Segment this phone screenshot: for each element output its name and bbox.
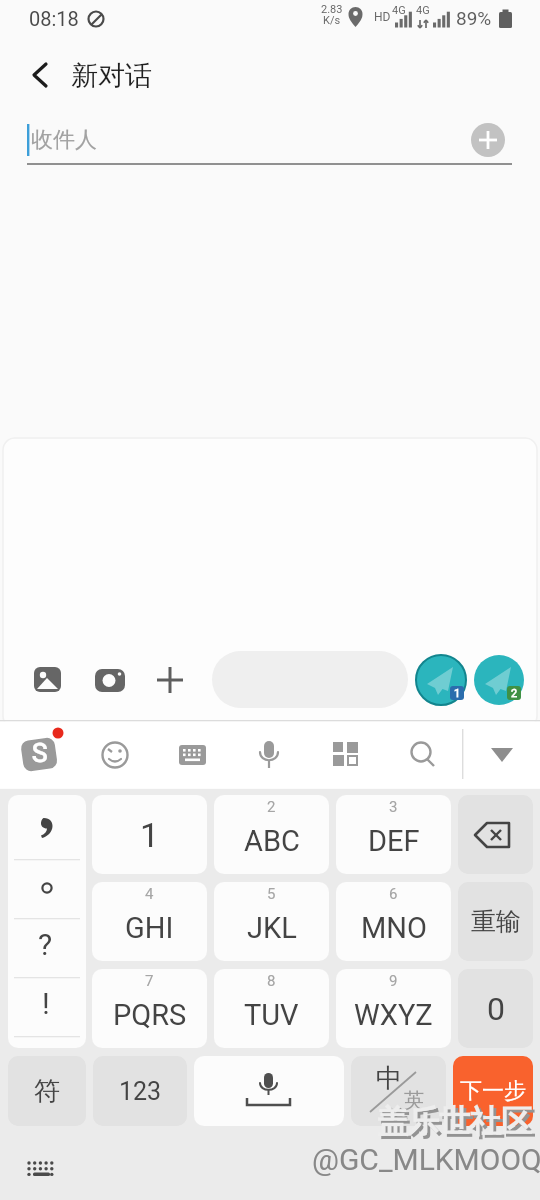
staticText: PQRS [113, 998, 187, 1032]
staticText: 4 [145, 885, 154, 903]
staticText: ABC [244, 824, 300, 858]
button[interactable] [458, 795, 533, 874]
staticText: 2.83 [321, 3, 343, 16]
staticText: 1 [454, 687, 461, 700]
staticText: ? [38, 927, 53, 962]
staticText: @GC_MLKMOOQ [312, 1142, 540, 1177]
button[interactable]: 6 [336, 882, 451, 961]
staticText: 08:18 [29, 7, 79, 30]
button[interactable]: 3 [336, 795, 451, 874]
staticText: 英 [404, 1088, 424, 1113]
button[interactable] [351, 1056, 446, 1126]
button[interactable]: 4 [92, 882, 207, 961]
button[interactable]: 2 [214, 795, 329, 874]
staticText: 6 [389, 885, 398, 903]
staticText: 新对话 [71, 59, 152, 93]
staticText: 盖乐世社区 [377, 1102, 532, 1141]
staticText: 4G [392, 4, 406, 17]
button[interactable]: 重输 [458, 882, 533, 961]
staticText: 符 [34, 1075, 60, 1108]
staticText: 下一步 [460, 1077, 526, 1105]
button[interactable]: 9 [336, 969, 451, 1048]
button[interactable]: 下一步 [453, 1056, 533, 1126]
staticText: 盖乐世社区 [380, 1105, 535, 1144]
staticText: ! [42, 986, 50, 1021]
staticText: DEF [368, 824, 420, 858]
button[interactable]: 0 [458, 969, 533, 1048]
button[interactable]: 符 [8, 1056, 86, 1126]
staticText: WXYZ [354, 998, 433, 1032]
staticText: 1 [140, 815, 160, 855]
staticText: 收件人 [31, 126, 97, 154]
button[interactable]: 7 [92, 969, 207, 1048]
staticText: 2 [267, 798, 276, 816]
staticText: 中 [376, 1062, 402, 1095]
staticText: K/s [323, 14, 341, 27]
staticText: GHI [125, 911, 174, 945]
staticText: 0 [487, 990, 505, 1028]
button[interactable]: 123 [93, 1056, 187, 1126]
staticText: 5 [267, 885, 276, 903]
staticText: 9 [389, 972, 398, 990]
button[interactable]: 1 [92, 795, 207, 874]
staticText: 3 [389, 798, 398, 816]
button[interactable]: 8 [214, 969, 329, 1048]
staticText: 7 [145, 972, 154, 990]
staticText: 2 [511, 687, 518, 700]
staticText: MNO [361, 911, 427, 945]
staticText: 123 [119, 1077, 162, 1106]
button[interactable] [194, 1056, 344, 1126]
staticText: 8 [267, 972, 276, 990]
button[interactable]: 5 [214, 882, 329, 961]
staticText: JKL [247, 911, 297, 945]
button[interactable] [8, 795, 86, 1048]
staticText: 89% [456, 7, 492, 29]
staticText: S [32, 738, 48, 768]
staticText: 重输 [471, 906, 521, 937]
staticText: HD [374, 10, 391, 24]
staticText: TUV [244, 998, 299, 1032]
staticText: 4G [416, 4, 430, 17]
